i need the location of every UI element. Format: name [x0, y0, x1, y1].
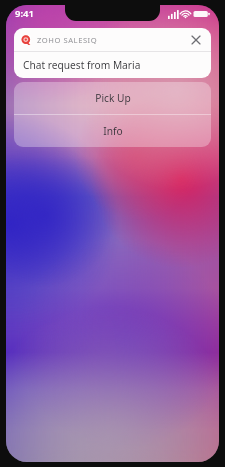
button[interactable]: Info — [14, 115, 211, 147]
staticText: ZOHO SALESIQ — [37, 35, 98, 45]
staticText: Info — [103, 124, 123, 138]
button[interactable]: Pick Up — [14, 82, 211, 114]
staticText: Pick Up — [95, 91, 131, 105]
button[interactable]: Close notification — [188, 32, 204, 48]
staticText: 9:41 — [15, 7, 34, 20]
staticText: Chat request from Maria — [23, 58, 141, 72]
button[interactable]: ZOHO SALESIQ — [14, 28, 211, 78]
